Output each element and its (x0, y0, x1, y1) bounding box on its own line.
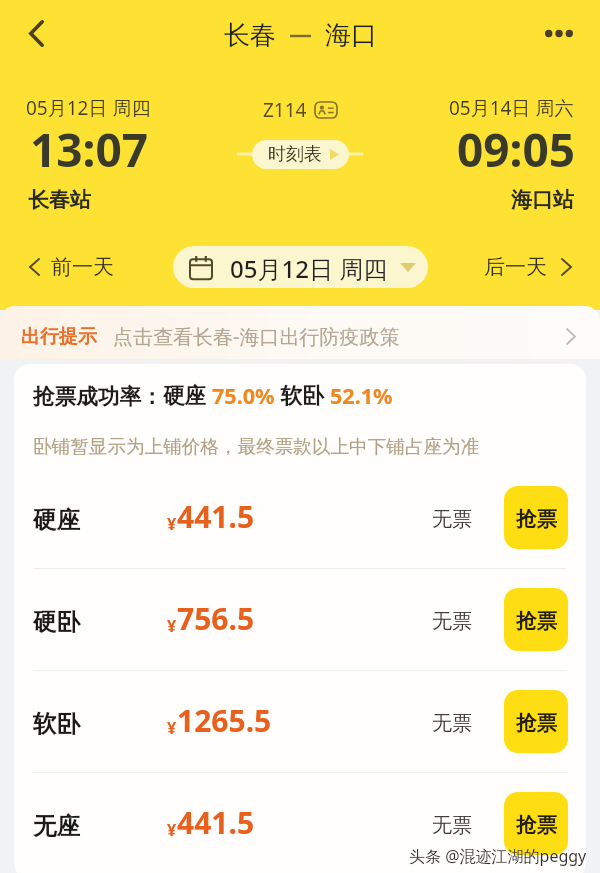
button[interactable]: More options (533, 7, 585, 59)
staticText: 441.5 (177, 802, 255, 843)
staticText: 05月12日 周四 (230, 252, 388, 282)
staticText: ¥ (167, 819, 177, 841)
button[interactable]: 软卧 (14, 671, 586, 772)
staticText: 13:07 (30, 118, 149, 181)
staticText: 卧铺暂显示为上铺价格，最终票款以上中下铺占座为准 (33, 435, 480, 458)
staticText: 后一天 (484, 254, 547, 280)
button[interactable]: 抢票 (504, 690, 568, 753)
button[interactable]: 出行提示 (0, 306, 600, 359)
staticText: 软卧 (33, 709, 80, 739)
button[interactable]: 抢票 (504, 792, 568, 855)
staticText: 441.5 (177, 496, 255, 537)
staticText: 硬座 (33, 505, 80, 535)
staticText: 75.0% (212, 381, 275, 410)
staticText: 硬卧 (33, 607, 80, 637)
staticText: 长春 (224, 19, 276, 52)
staticText: 时刻表 (268, 143, 322, 166)
staticText: 头条 @混迹江湖的peggy (409, 845, 587, 867)
button[interactable]: Back (10, 7, 62, 59)
staticText: 点击查看长春-海口出行防疫政策 (113, 323, 400, 350)
button[interactable]: 抢票 (504, 486, 568, 549)
staticText: 抢票 (516, 608, 557, 634)
staticText: 1265.5 (177, 700, 272, 741)
button[interactable]: 时刻表 (252, 140, 349, 169)
button[interactable]: 抢票 (504, 588, 568, 651)
button[interactable]: 硬座 (14, 467, 586, 568)
button[interactable]: 无座 (14, 773, 586, 873)
staticText: 05月12日 周四 (26, 95, 151, 121)
staticText: 52.1% (330, 381, 393, 410)
staticText: 出行提示 (21, 325, 97, 349)
button[interactable]: 前一天 (23, 247, 120, 287)
staticText: 无座 (33, 811, 80, 841)
staticText: 前一天 (51, 254, 114, 280)
staticText: 抢票 (516, 506, 557, 532)
staticText: 抢票 (516, 812, 557, 838)
staticText: 756.5 (177, 598, 255, 639)
staticText: 硬座 (163, 380, 212, 410)
staticText: ¥ (167, 717, 177, 739)
staticText: 软卧 (275, 380, 330, 410)
button[interactable]: 后一天 (478, 247, 578, 287)
staticText: 长春站 (28, 187, 91, 213)
staticText: 无票 (432, 507, 472, 532)
staticText: 09:05 (457, 118, 576, 181)
staticText: 海口 (325, 19, 377, 52)
staticText: 海口站 (511, 187, 574, 213)
staticText: ¥ (167, 513, 177, 535)
staticText: ¥ (167, 615, 177, 637)
staticText: 抢票 (516, 710, 557, 736)
staticText: 无票 (432, 813, 472, 838)
staticText: Z114 (263, 97, 307, 123)
staticText: 05月14日 周六 (449, 95, 574, 121)
staticText: 无票 (432, 609, 472, 634)
button[interactable]: 05月12日 周四 (173, 246, 428, 288)
button[interactable]: 硬卧 (14, 569, 586, 670)
staticText: 无票 (432, 711, 472, 736)
staticText: 抢票成功率： (33, 383, 163, 410)
